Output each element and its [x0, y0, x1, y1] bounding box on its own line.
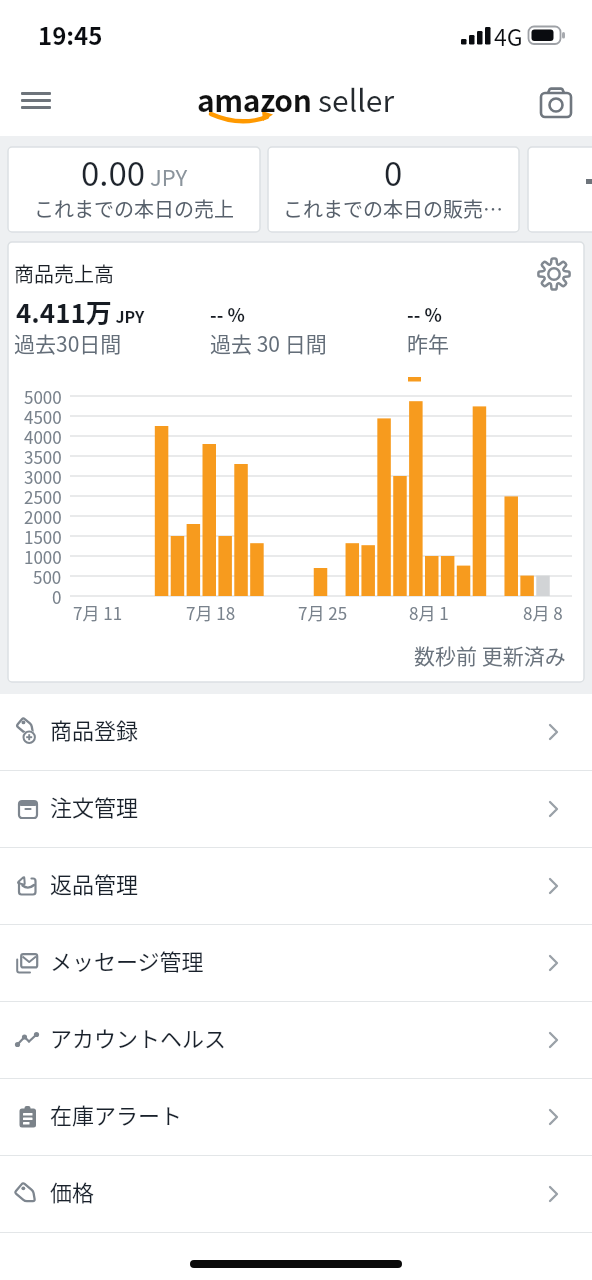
button[interactable] — [536, 256, 572, 292]
staticText: 8月 8 — [523, 600, 563, 625]
button[interactable] — [0, 848, 592, 925]
staticText: 3000 — [24, 464, 62, 489]
staticText: 2000 — [24, 504, 62, 529]
button[interactable] — [0, 1156, 592, 1233]
staticText: 数秒前 更新済み — [414, 640, 566, 670]
staticText: 500 — [33, 564, 62, 589]
staticText: 7月 11 — [73, 600, 123, 625]
staticText: 過去 30 日間 — [210, 328, 327, 358]
button[interactable] — [0, 771, 592, 848]
button[interactable] — [0, 925, 592, 1002]
button[interactable] — [268, 147, 519, 232]
staticText: 0 — [52, 584, 62, 609]
staticText: 7月 25 — [298, 600, 348, 625]
staticText: これまでの本日の販売… — [283, 194, 503, 223]
button[interactable] — [0, 1079, 592, 1156]
staticText: 商品売上高 — [14, 259, 114, 288]
button[interactable] — [0, 1002, 592, 1079]
staticText: 注文管理 — [50, 790, 139, 822]
staticText: 4.411万 JPY — [16, 293, 145, 331]
staticText: -- % — [210, 301, 245, 327]
staticText: 0.00 JPY — [81, 148, 188, 196]
staticText: 1500 — [24, 524, 62, 549]
staticText: アカウントヘルス — [50, 1021, 227, 1053]
staticText: 5000 — [24, 384, 62, 409]
staticText: 価格 — [50, 1175, 95, 1207]
button[interactable] — [8, 147, 260, 232]
staticText: 昨年 — [407, 328, 449, 358]
staticText: -- % — [407, 301, 442, 327]
staticText: 0 — [384, 148, 403, 196]
staticText: 4500 — [24, 404, 62, 429]
staticText: メッセージ管理 — [50, 944, 204, 976]
staticText: 8月 1 — [409, 600, 449, 625]
staticText: 2500 — [24, 484, 62, 509]
staticText: 4G — [494, 19, 523, 52]
button[interactable] — [528, 147, 592, 232]
staticText: amazon seller — [197, 77, 395, 120]
staticText: 在庫アラート — [50, 1098, 183, 1130]
staticText: 3500 — [24, 444, 62, 469]
staticText: 19:45 — [38, 17, 103, 52]
staticText: 返品管理 — [50, 867, 139, 899]
staticText: 1000 — [24, 544, 62, 569]
staticText: これまでの本日の売上 — [34, 194, 234, 223]
staticText: 商品登録 — [50, 713, 139, 745]
staticText: 4000 — [24, 424, 62, 449]
button[interactable] — [0, 694, 592, 771]
staticText: 7月 18 — [186, 600, 236, 625]
staticText: 過去30日間 — [14, 328, 122, 358]
button[interactable] — [12, 80, 60, 120]
button[interactable] — [532, 82, 580, 122]
